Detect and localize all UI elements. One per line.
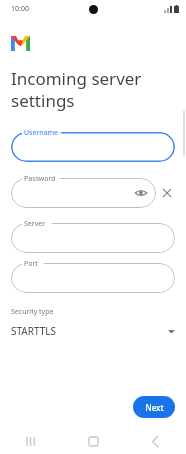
button[interactable]: [11, 263, 175, 293]
button[interactable]: Security type: [11, 307, 175, 338]
staticText: Next: [145, 402, 164, 413]
button[interactable]: Show password: [11, 178, 156, 208]
staticText: Security type: [11, 307, 54, 317]
button[interactable]: [11, 223, 175, 253]
button[interactable]: Show password: [134, 186, 148, 200]
button[interactable]: Next: [133, 396, 175, 418]
button[interactable]: Clear password: [159, 185, 175, 201]
button[interactable]: Back: [124, 428, 186, 454]
staticText: 10:00: [11, 4, 29, 14]
button[interactable]: Home: [62, 428, 124, 454]
staticText: Port: [24, 259, 38, 269]
staticText: Username: [24, 128, 59, 138]
button[interactable]: Recent apps: [0, 428, 62, 454]
staticText: STARTTLS: [11, 324, 168, 338]
staticText: Server: [24, 219, 46, 229]
button[interactable]: [11, 132, 175, 162]
staticText: Incoming server settings: [11, 67, 142, 112]
staticText: Password: [24, 174, 56, 184]
